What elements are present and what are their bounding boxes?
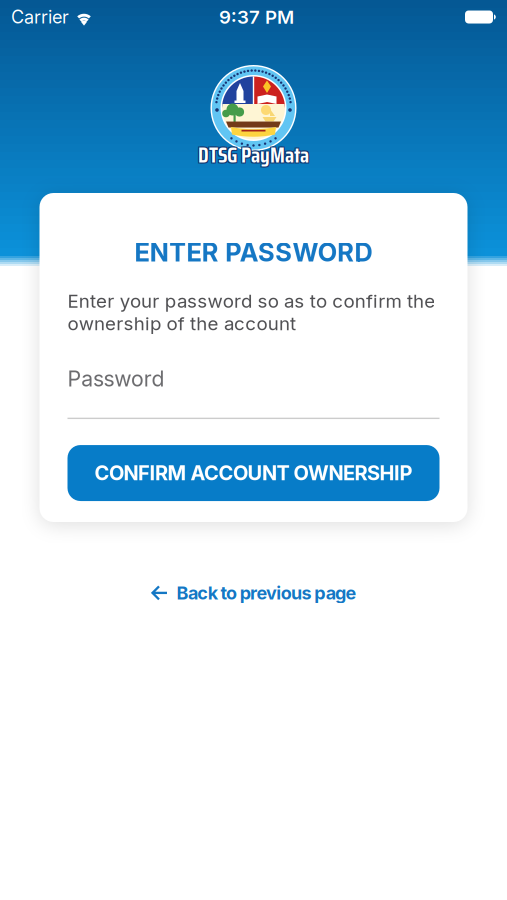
staticText: DTSG PayMata <box>199 139 310 173</box>
button[interactable]: CONFIRM ACCOUNT OWNERSHIP <box>67 445 439 501</box>
staticText: Enter your password so as to confirm the… <box>67 290 435 335</box>
staticText: 9:37 PM <box>219 6 294 28</box>
staticText: ENTER PASSWORD <box>135 237 372 268</box>
staticText: Password <box>67 366 164 392</box>
button[interactable]: Password <box>67 366 439 419</box>
staticText: DTSG PayMata <box>197 139 308 173</box>
staticText: CONFIRM ACCOUNT OWNERSHIP <box>94 461 412 485</box>
staticText: DTSG PayMata <box>198 138 309 172</box>
staticText: Carrier <box>11 6 69 28</box>
staticText: DTSG PayMata <box>199 137 310 171</box>
button[interactable]: Back to previous page <box>150 582 356 604</box>
staticText: Back to previous page <box>176 582 356 604</box>
staticText: DTSG PayMata <box>197 137 308 171</box>
